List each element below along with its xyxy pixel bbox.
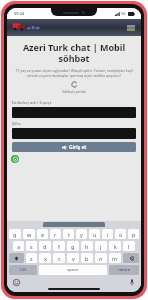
button[interactable]: t: [63, 229, 74, 239]
staticText: k: [114, 243, 117, 250]
button[interactable]: x: [39, 253, 51, 263]
button[interactable]: Giriş et: [12, 142, 136, 152]
staticText: f: [58, 243, 60, 250]
staticText: l: [128, 243, 130, 250]
button[interactable]: u: [89, 229, 100, 239]
staticText: Giriş et: [69, 144, 87, 151]
staticText: x: [44, 255, 47, 262]
staticText: 09:24: [14, 11, 25, 16]
staticText: b: [85, 255, 89, 262]
button[interactable]: Söhbəti yenilə: [7, 79, 141, 96]
button[interactable]: y: [76, 229, 87, 239]
staticText: u: [93, 231, 97, 238]
staticText: g: [71, 243, 75, 250]
button[interactable]: p: [128, 229, 139, 239]
staticText: c: [58, 255, 61, 262]
button[interactable]: 123: [9, 265, 37, 275]
button[interactable]: w: [23, 229, 35, 239]
button[interactable]: space: [39, 265, 107, 275]
staticText: j: [100, 243, 102, 250]
staticText: d: [43, 243, 47, 250]
button[interactable]: q: [9, 229, 21, 239]
button[interactable]: i: [102, 229, 113, 239]
button[interactable]: s: [26, 241, 37, 251]
button[interactable]: g: [67, 241, 79, 251]
staticText: n: [99, 255, 103, 262]
button[interactable]: d: [39, 241, 51, 251]
button[interactable]: z: [26, 253, 37, 263]
staticText: Söhbəti yenilə: [62, 89, 86, 94]
staticText: e: [41, 231, 45, 238]
button[interactable]: m: [109, 253, 121, 263]
button[interactable]: Emoji: [12, 278, 20, 286]
staticText: r: [54, 231, 57, 238]
button[interactable]: f: [53, 241, 65, 251]
staticText: s: [30, 243, 33, 250]
button[interactable]: Voice input: [128, 278, 136, 286]
button[interactable]: k: [109, 241, 121, 251]
staticText: 17 yaş və yuxarı üçün uyğundur! Əlaqəli …: [12, 68, 136, 78]
button[interactable]: v: [67, 253, 79, 263]
staticText: 123: [19, 267, 27, 273]
staticText: w: [27, 231, 32, 238]
button[interactable]: r: [50, 229, 61, 239]
staticText: h: [85, 243, 89, 250]
staticText: Azeri Turk chat | Mobil söhbət: [13, 41, 135, 64]
staticText: q: [13, 231, 17, 238]
staticText: m: [112, 255, 118, 262]
staticText: return: [118, 267, 131, 273]
button[interactable]: o: [115, 229, 126, 239]
button[interactable]: e: [37, 229, 48, 239]
button[interactable]: h: [81, 241, 93, 251]
button[interactable]: return: [109, 265, 139, 275]
staticText: space: [67, 267, 79, 273]
staticText: Şifrə: [12, 121, 21, 126]
button[interactable]: Home: [12, 22, 40, 33]
staticText: p: [132, 231, 136, 238]
staticText: İstifadəçi adı / E-poçt: [12, 100, 52, 105]
staticText: o: [119, 231, 123, 238]
button[interactable]: Menu: [126, 23, 135, 32]
button[interactable]: j: [95, 241, 107, 251]
staticText: 5G: [121, 11, 126, 16]
staticText: y: [80, 231, 83, 238]
staticText: a: [17, 243, 21, 250]
button[interactable]: WhatsApp: [11, 155, 19, 163]
staticText: t: [68, 231, 70, 238]
button[interactable]: Shift: [9, 253, 24, 263]
button[interactable]: Backspace: [123, 253, 139, 263]
staticText: i: [107, 231, 109, 238]
button[interactable]: b: [81, 253, 93, 263]
staticText: z: [30, 255, 33, 262]
button[interactable]: l: [123, 241, 135, 251]
button[interactable]: n: [95, 253, 107, 263]
staticText: v: [72, 255, 75, 262]
button[interactable]: a: [13, 241, 24, 251]
button[interactable]: c: [53, 253, 65, 263]
